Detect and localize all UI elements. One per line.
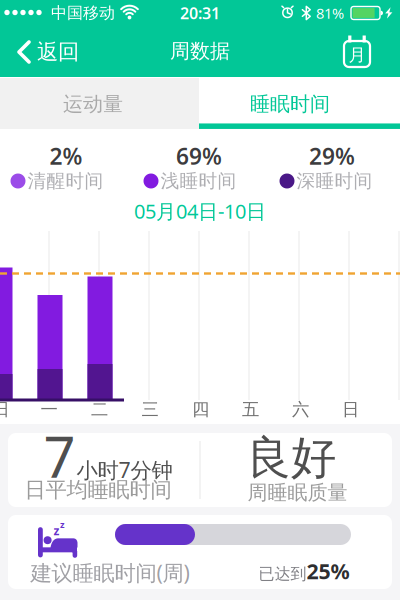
staticText: 良好 (246, 430, 336, 486)
staticText: z (53, 522, 59, 538)
staticText: 一 (40, 399, 57, 420)
staticText: 六 (292, 399, 309, 420)
staticText: 中国移动 (51, 3, 115, 23)
staticText: 81% (316, 3, 344, 23)
staticText: 四 (192, 399, 209, 420)
staticText: 已达到 (258, 564, 306, 584)
staticText: 清醒时间 (27, 169, 103, 192)
staticText: 二 (91, 399, 108, 420)
staticText: 浅睡时间 (160, 169, 236, 192)
staticText: z (60, 518, 65, 531)
staticText: 返回 (37, 39, 79, 65)
button[interactable]: 睡眠时间 (199, 78, 400, 129)
staticText: 建议睡眠时间(周) (30, 558, 189, 587)
staticText: 日 (342, 399, 359, 420)
staticText: 日平均睡眠时间 (24, 477, 171, 503)
staticText: 20:31 (180, 2, 220, 24)
staticText: 29% (309, 141, 355, 171)
staticText: 日 (0, 399, 9, 420)
staticText: 2% (49, 141, 82, 171)
staticText: 深睡时间 (296, 169, 372, 192)
staticText: 69% (176, 141, 222, 171)
staticText: 周睡眠质量 (247, 480, 347, 505)
staticText: 月 (348, 44, 365, 66)
staticText: 25% (306, 557, 349, 585)
staticText: 小时7分钟 (76, 456, 172, 484)
staticText: 五 (242, 399, 259, 420)
staticText: 周数据 (170, 39, 230, 63)
staticText: 7 (43, 419, 75, 493)
staticText: 05月04日-10日 (134, 198, 266, 224)
staticText: 睡眠时间 (250, 92, 330, 116)
staticText: 运动量 (63, 92, 123, 116)
staticText: 三 (141, 399, 158, 420)
button[interactable]: 返回 (8, 30, 88, 74)
button[interactable]: 按月查看 (337, 30, 377, 74)
button[interactable]: 运动量 (0, 78, 199, 129)
